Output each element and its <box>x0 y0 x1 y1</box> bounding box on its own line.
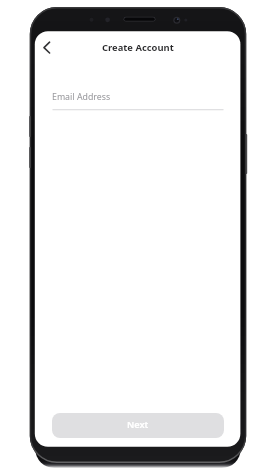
staticText: Email Address <box>52 91 111 103</box>
staticText: Create Account <box>102 41 174 54</box>
staticText: Next <box>127 418 149 431</box>
